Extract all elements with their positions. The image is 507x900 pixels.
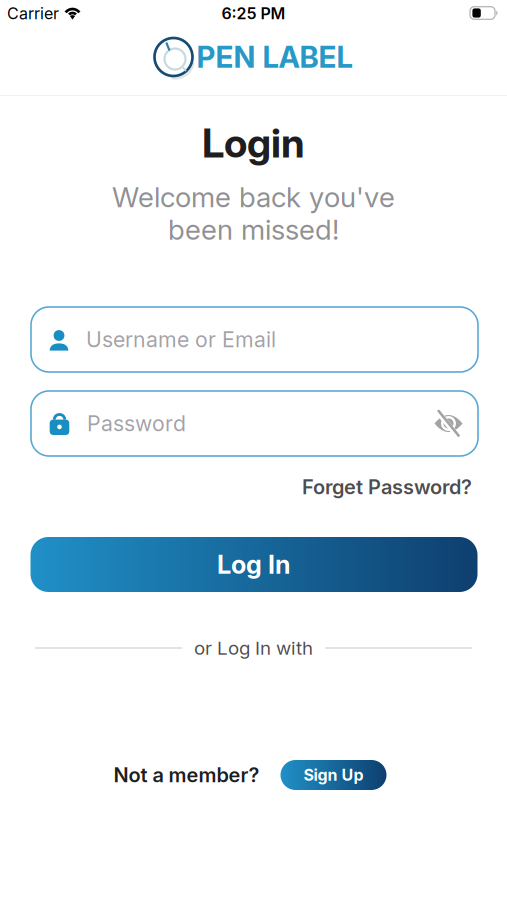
staticText: Password [87, 411, 186, 436]
staticText: 6:25 PM [221, 4, 285, 23]
staticText: been missed! [168, 213, 339, 246]
staticText: Welcome back you've [112, 180, 395, 213]
staticText: Log In [217, 550, 291, 579]
staticText: Not a member? [113, 763, 259, 787]
staticText: PEN LABEL [196, 40, 352, 74]
staticText: Login [202, 119, 305, 167]
staticText: Carrier [7, 4, 59, 23]
staticText: Forget Password? [302, 475, 472, 499]
staticText: Sign Up [303, 766, 363, 784]
staticText: Username or Email [86, 327, 276, 352]
staticText: or Log In with [194, 637, 313, 659]
